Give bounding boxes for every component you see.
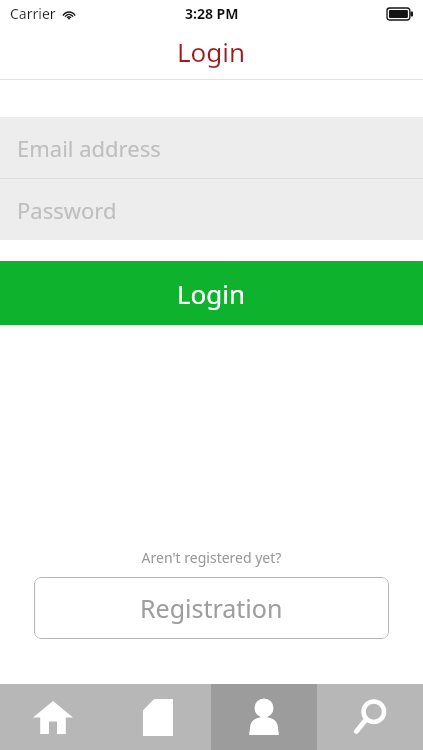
button[interactable]: Login (0, 261, 423, 325)
staticText: Carrier (10, 4, 56, 23)
button[interactable]: Documents (105, 684, 211, 750)
button[interactable]: Home (0, 684, 105, 750)
staticText: Password (17, 195, 117, 225)
staticText: Aren't registered yet? (0, 548, 423, 567)
button[interactable]: Profile (211, 684, 317, 750)
staticText: Email address (17, 133, 161, 163)
staticText: 3:28 PM (185, 4, 239, 23)
staticText: Login (177, 276, 246, 311)
button[interactable]: Password (0, 179, 423, 240)
staticText: Login (177, 34, 246, 69)
staticText: Registration (140, 591, 283, 625)
button[interactable]: Registration (34, 577, 389, 639)
button[interactable]: Email address (0, 117, 423, 178)
button[interactable]: Search (317, 684, 423, 750)
